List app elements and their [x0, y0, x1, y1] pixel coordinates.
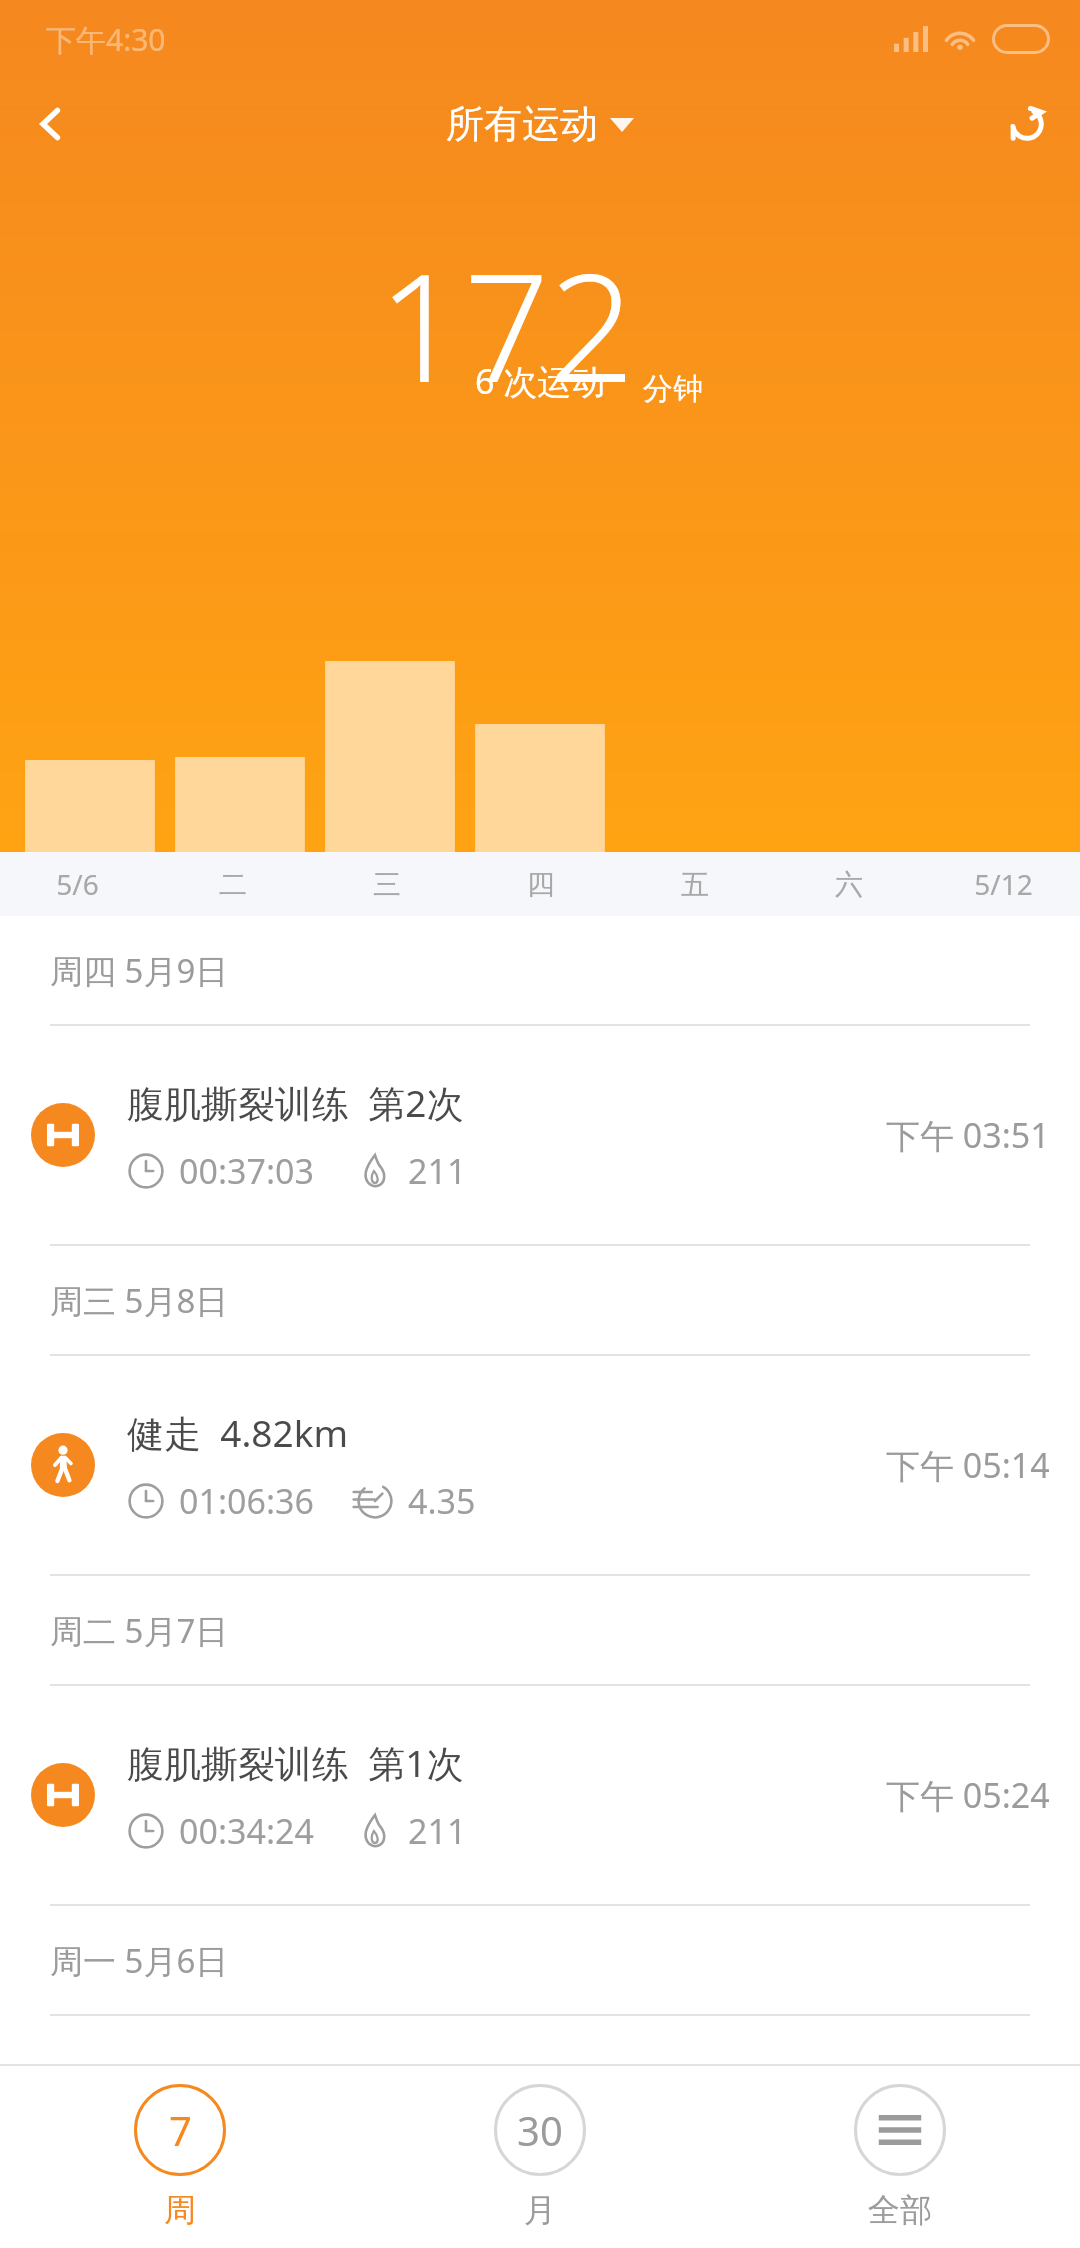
staticText: 7	[169, 2103, 192, 2157]
staticText: 周四 5月9日	[50, 948, 229, 993]
button[interactable]: 5/6	[0, 852, 155, 916]
staticText: 6 次运动	[475, 358, 606, 404]
button[interactable]: 健走 4.82km	[0, 1356, 1080, 1574]
staticText: 211	[408, 1148, 467, 1194]
button[interactable]: 周	[0, 2066, 360, 2248]
button[interactable]: 腹肌撕裂训练 第2次	[0, 1026, 1080, 1244]
button[interactable]: 周四 5月9日	[0, 916, 1080, 1024]
staticText: 4.35	[408, 1478, 476, 1524]
button[interactable]: Sync	[990, 87, 1064, 161]
staticText: 二	[219, 867, 247, 902]
staticText: 周	[164, 2190, 196, 2230]
button[interactable]: 周二 5月7日	[0, 1576, 1080, 1684]
button[interactable]: 五	[618, 852, 772, 916]
staticText: 172	[378, 222, 635, 426]
staticText: 四	[527, 867, 555, 902]
button[interactable]: 四	[464, 852, 618, 916]
staticText: 下午 03:51	[886, 1112, 1050, 1158]
staticText: 全部	[868, 2190, 932, 2230]
staticText: 下午 05:14	[886, 1442, 1050, 1488]
staticText: 00:34:24	[179, 1808, 314, 1854]
staticText: 下午 05:24	[886, 1772, 1050, 1818]
staticText: 周二 5月7日	[50, 1608, 229, 1653]
button[interactable]: 周三 5月8日	[0, 1246, 1080, 1354]
staticText: 5/6	[56, 865, 99, 903]
staticText: 30	[517, 2103, 563, 2157]
button[interactable]: 二	[155, 852, 310, 916]
staticText: 00:37:03	[179, 1148, 314, 1194]
staticText: 00:29:15	[179, 2138, 314, 2184]
button[interactable]: 三	[310, 852, 464, 916]
staticText: 5/12	[974, 865, 1033, 903]
staticText: 腹肌撕裂训练 第1次	[127, 1737, 464, 1788]
button[interactable]: 月	[360, 2066, 720, 2248]
staticText: 六	[835, 867, 863, 902]
staticText: 周三 5月8日	[50, 1278, 229, 1323]
staticText: 腹肌撕裂者进阶 第33次	[127, 2067, 522, 2118]
button[interactable]: Back	[14, 87, 88, 161]
staticText: 腹肌撕裂训练 第2次	[127, 1077, 464, 1128]
button[interactable]: 六	[772, 852, 926, 916]
button[interactable]: 所有运动	[434, 92, 646, 156]
staticText: 周一 5月6日	[50, 1938, 229, 1983]
staticText: 下午 05:22	[886, 2102, 1050, 2148]
button[interactable]: 全部	[720, 2066, 1080, 2248]
button[interactable]: 5/12	[926, 852, 1080, 916]
staticText: 01:06:36	[179, 1478, 314, 1524]
button[interactable]: 腹肌撕裂者进阶 第33次	[0, 2016, 1080, 2234]
staticText: 月	[524, 2190, 556, 2230]
staticText: 下午4:30	[46, 19, 166, 60]
staticText: 所有运动	[446, 100, 598, 148]
staticText: 健走 4.82km	[127, 1407, 349, 1458]
staticText: 211	[408, 1808, 467, 1854]
staticText: 三	[373, 867, 401, 902]
staticText: 分钟	[643, 370, 703, 408]
button[interactable]: 腹肌撕裂训练 第1次	[0, 1686, 1080, 1904]
staticText: 五	[681, 867, 709, 902]
button[interactable]: 周一 5月6日	[0, 1906, 1080, 2014]
